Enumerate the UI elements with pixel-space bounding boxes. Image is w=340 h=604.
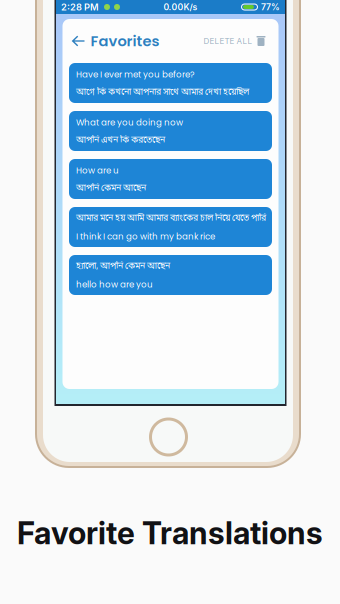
staticText: Have I ever met you before? xyxy=(76,68,195,80)
button[interactable]: Back to Favorites xyxy=(62,19,165,63)
button[interactable]: আমার মনে হয় আমি আমার ব্যাংকের চাল নিয়ে… xyxy=(69,207,272,247)
staticText: 77% xyxy=(261,2,280,12)
staticText: I think I can go with my bank rice xyxy=(76,230,215,242)
staticText: What are you doing now xyxy=(76,116,183,128)
staticText: How are u xyxy=(76,164,119,176)
staticText: hello how are you xyxy=(76,278,153,290)
staticText: DELETE ALL xyxy=(203,36,252,46)
staticText: হ্যালো, আপনি কেমন আছেন xyxy=(76,261,170,272)
staticText: আপনি কেমন আছেন xyxy=(76,183,146,194)
staticText: Favorites xyxy=(90,31,159,51)
button[interactable]: Delete all favorites xyxy=(203,19,278,63)
staticText: 0.00K/s xyxy=(163,2,197,12)
button[interactable]: Have I ever met you before? xyxy=(69,63,272,103)
button[interactable]: What are you doing now xyxy=(69,111,272,151)
staticText: Favorite Translations xyxy=(17,514,323,551)
staticText: আপনি এখন কি করতেছেন xyxy=(76,135,165,146)
staticText: আমার মনে হয় আমি আমার ব্যাংকের চাল নিয়ে… xyxy=(76,213,266,224)
staticText: 2:28 PM xyxy=(61,1,99,13)
button[interactable]: How are u xyxy=(69,159,272,199)
staticText: আগে কি কখনো আপনার সাথে আমার দেখা হয়েছিল xyxy=(76,87,249,98)
button[interactable]: হ্যালো, আপনি কেমন আছেন xyxy=(69,255,272,295)
